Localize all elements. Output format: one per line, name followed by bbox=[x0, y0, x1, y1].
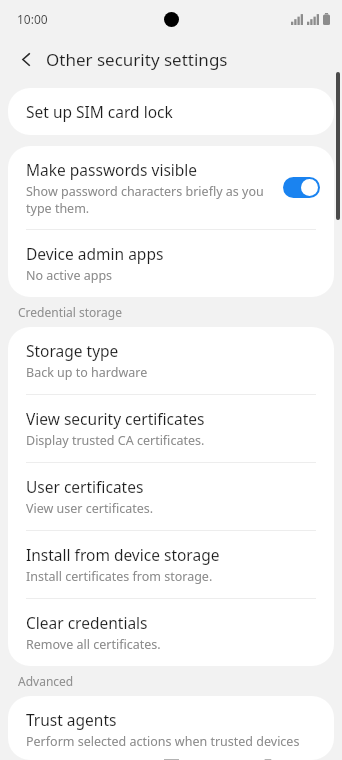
staticText: Clear credentials bbox=[26, 612, 148, 633]
staticText: Credential storage bbox=[18, 304, 122, 320]
staticText: Install from device storage bbox=[26, 544, 220, 565]
staticText: No active apps bbox=[26, 267, 113, 284]
button[interactable]: User certificates bbox=[8, 463, 334, 530]
staticText: Show password characters briefly as you … bbox=[26, 183, 275, 216]
button[interactable]: Make passwords visible toggle bbox=[283, 177, 320, 198]
button[interactable]: Back bbox=[8, 41, 44, 77]
staticText: 10:00 bbox=[17, 11, 48, 27]
staticText: Install certificates from storage. bbox=[26, 568, 213, 585]
staticText: View user certificates. bbox=[26, 500, 154, 517]
staticText: Back up to hardware bbox=[26, 364, 148, 381]
staticText: Advanced bbox=[18, 673, 74, 689]
staticText: Other security settings bbox=[46, 48, 228, 71]
staticText: User certificates bbox=[26, 476, 144, 497]
button[interactable]: Device admin apps bbox=[8, 230, 334, 297]
button[interactable]: Set up SIM card lock bbox=[8, 88, 334, 135]
staticText: Perform selected actions when trusted de… bbox=[26, 733, 320, 747]
staticText: View security certificates bbox=[26, 408, 205, 429]
staticText: Trust agents bbox=[26, 709, 117, 730]
button[interactable]: View security certificates bbox=[8, 395, 334, 462]
staticText: Storage type bbox=[26, 340, 119, 361]
button[interactable]: Clear credentials bbox=[8, 599, 334, 666]
staticText: Make passwords visible bbox=[26, 159, 198, 180]
staticText: Remove all certificates. bbox=[26, 636, 161, 653]
staticText: Set up SIM card lock bbox=[26, 101, 173, 122]
button[interactable]: Storage type bbox=[8, 327, 334, 394]
button[interactable]: Trust agents bbox=[8, 696, 334, 760]
button[interactable]: Install from device storage bbox=[8, 531, 334, 598]
button[interactable]: Make passwords visible bbox=[8, 146, 334, 229]
staticText: Display trusted CA certificates. bbox=[26, 432, 205, 449]
staticText: Device admin apps bbox=[26, 243, 164, 264]
